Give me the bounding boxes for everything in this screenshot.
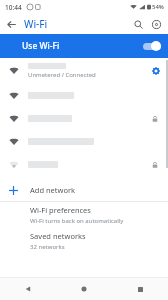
button[interactable]: [0, 130, 168, 153]
button[interactable]: Help: [147, 15, 165, 33]
button[interactable]: Back: [0, 278, 56, 300]
button[interactable]: Home: [56, 278, 112, 300]
staticText: Unmetered / Connected: [28, 71, 96, 79]
button[interactable]: Search: [129, 15, 147, 33]
button[interactable]: Network settings: [148, 63, 164, 79]
staticText: Wi-Fi turns back on automatically: [30, 217, 124, 225]
staticText: Use Wi-Fi: [22, 40, 60, 52]
staticText: Saved networks: [30, 231, 86, 241]
button[interactable]: Add network: [0, 179, 168, 201]
button[interactable]: [0, 107, 168, 130]
staticText: 54%: [152, 3, 164, 11]
staticText: 10:44: [5, 3, 22, 12]
button[interactable]: Recent apps: [112, 278, 168, 300]
button[interactable]: [0, 153, 168, 176]
button[interactable]: Back: [2, 15, 20, 33]
staticText: 32 networks: [30, 243, 65, 251]
button[interactable]: Saved networks: [0, 228, 168, 254]
button[interactable]: [0, 84, 168, 107]
staticText: Wi-Fi preferences: [30, 205, 91, 215]
button[interactable]: Use Wi-Fi: [0, 34, 168, 58]
button[interactable]: Wi-Fi preferences: [0, 202, 168, 228]
staticText: Wi-Fi: [24, 17, 48, 31]
staticText: Add network: [30, 185, 76, 195]
button[interactable]: Unmetered / Connected: [0, 58, 168, 84]
